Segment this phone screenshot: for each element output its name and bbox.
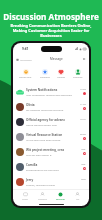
button[interactable]: Unread — [56, 69, 66, 79]
staticText: Hiring alliance expert now — [26, 123, 57, 126]
button[interactable]: Favorites — [39, 69, 51, 79]
staticText: Me — [76, 198, 80, 201]
staticText: Discover — [56, 198, 65, 201]
staticText: Unread — [57, 76, 65, 79]
staticText: Yest — [81, 148, 86, 151]
button[interactable]: Virtual Resource Station — [13, 129, 89, 144]
staticText: 1 — [84, 137, 86, 140]
staticText: Virtual Resource Station — [26, 133, 63, 137]
staticText: Yest — [81, 163, 86, 166]
staticText: Entrepreneurs are the heart — [26, 168, 59, 171]
button[interactable]: Wit project meeting, crea — [13, 144, 89, 159]
staticText: Let's go with option B — [26, 153, 52, 156]
staticText: 1 — [84, 107, 86, 110]
staticText: Re: meeting tomorrow morning — [26, 108, 64, 111]
staticText: 3 — [84, 152, 86, 155]
staticText: 09:55 — [80, 133, 86, 136]
button[interactable]: Me — [74, 192, 81, 201]
staticText: Contacts — [38, 198, 47, 201]
staticText: Official agency for advanc — [26, 118, 66, 122]
staticText: Camilla — [26, 163, 38, 167]
staticText: Messages — [20, 58, 32, 61]
staticText: 12:03 — [80, 88, 86, 91]
staticText: Favorites — [40, 76, 50, 79]
staticText: Olivia — [26, 103, 35, 107]
button[interactable]: Olivia — [13, 99, 89, 114]
button[interactable]: Official agency for advanc — [13, 114, 89, 129]
button[interactable]: Group Chat — [18, 69, 33, 79]
staticText: Wit project meeting, crea — [26, 148, 65, 152]
button[interactable]: Menu — [16, 58, 19, 61]
button[interactable]: More options — [82, 57, 86, 61]
staticText: Breaking Communication Barriers Online, … — [0, 23, 102, 38]
button[interactable]: System Notifications — [13, 84, 89, 99]
staticText: Chats — [22, 198, 28, 201]
button[interactable]: Camilla — [13, 159, 89, 174]
staticText: Group Chat — [19, 76, 32, 79]
staticText: 10:41 — [80, 118, 86, 121]
staticText: 11:22 — [80, 103, 86, 106]
button[interactable]: Chats — [21, 192, 29, 201]
staticText: 2 — [84, 167, 86, 170]
staticText: 9:41 — [22, 47, 29, 51]
button[interactable]: Discover — [55, 192, 66, 201]
staticText: Jerry — [26, 178, 34, 182]
button[interactable]: Contacts — [37, 192, 48, 201]
button[interactable]: Contacts — [72, 69, 84, 79]
staticText: Message — [50, 57, 63, 61]
staticText: Thanks, received it today — [26, 183, 56, 186]
staticText: All the files have been shared — [26, 138, 61, 141]
button[interactable]: Jerry — [13, 174, 89, 189]
staticText: Contacts — [73, 76, 83, 79]
staticText: System Notifications — [26, 88, 58, 92]
staticText: Discussion Atmosphere — [0, 11, 102, 22]
staticText: Your verification request was approved — [26, 93, 72, 96]
staticText: Mon — [81, 178, 86, 181]
